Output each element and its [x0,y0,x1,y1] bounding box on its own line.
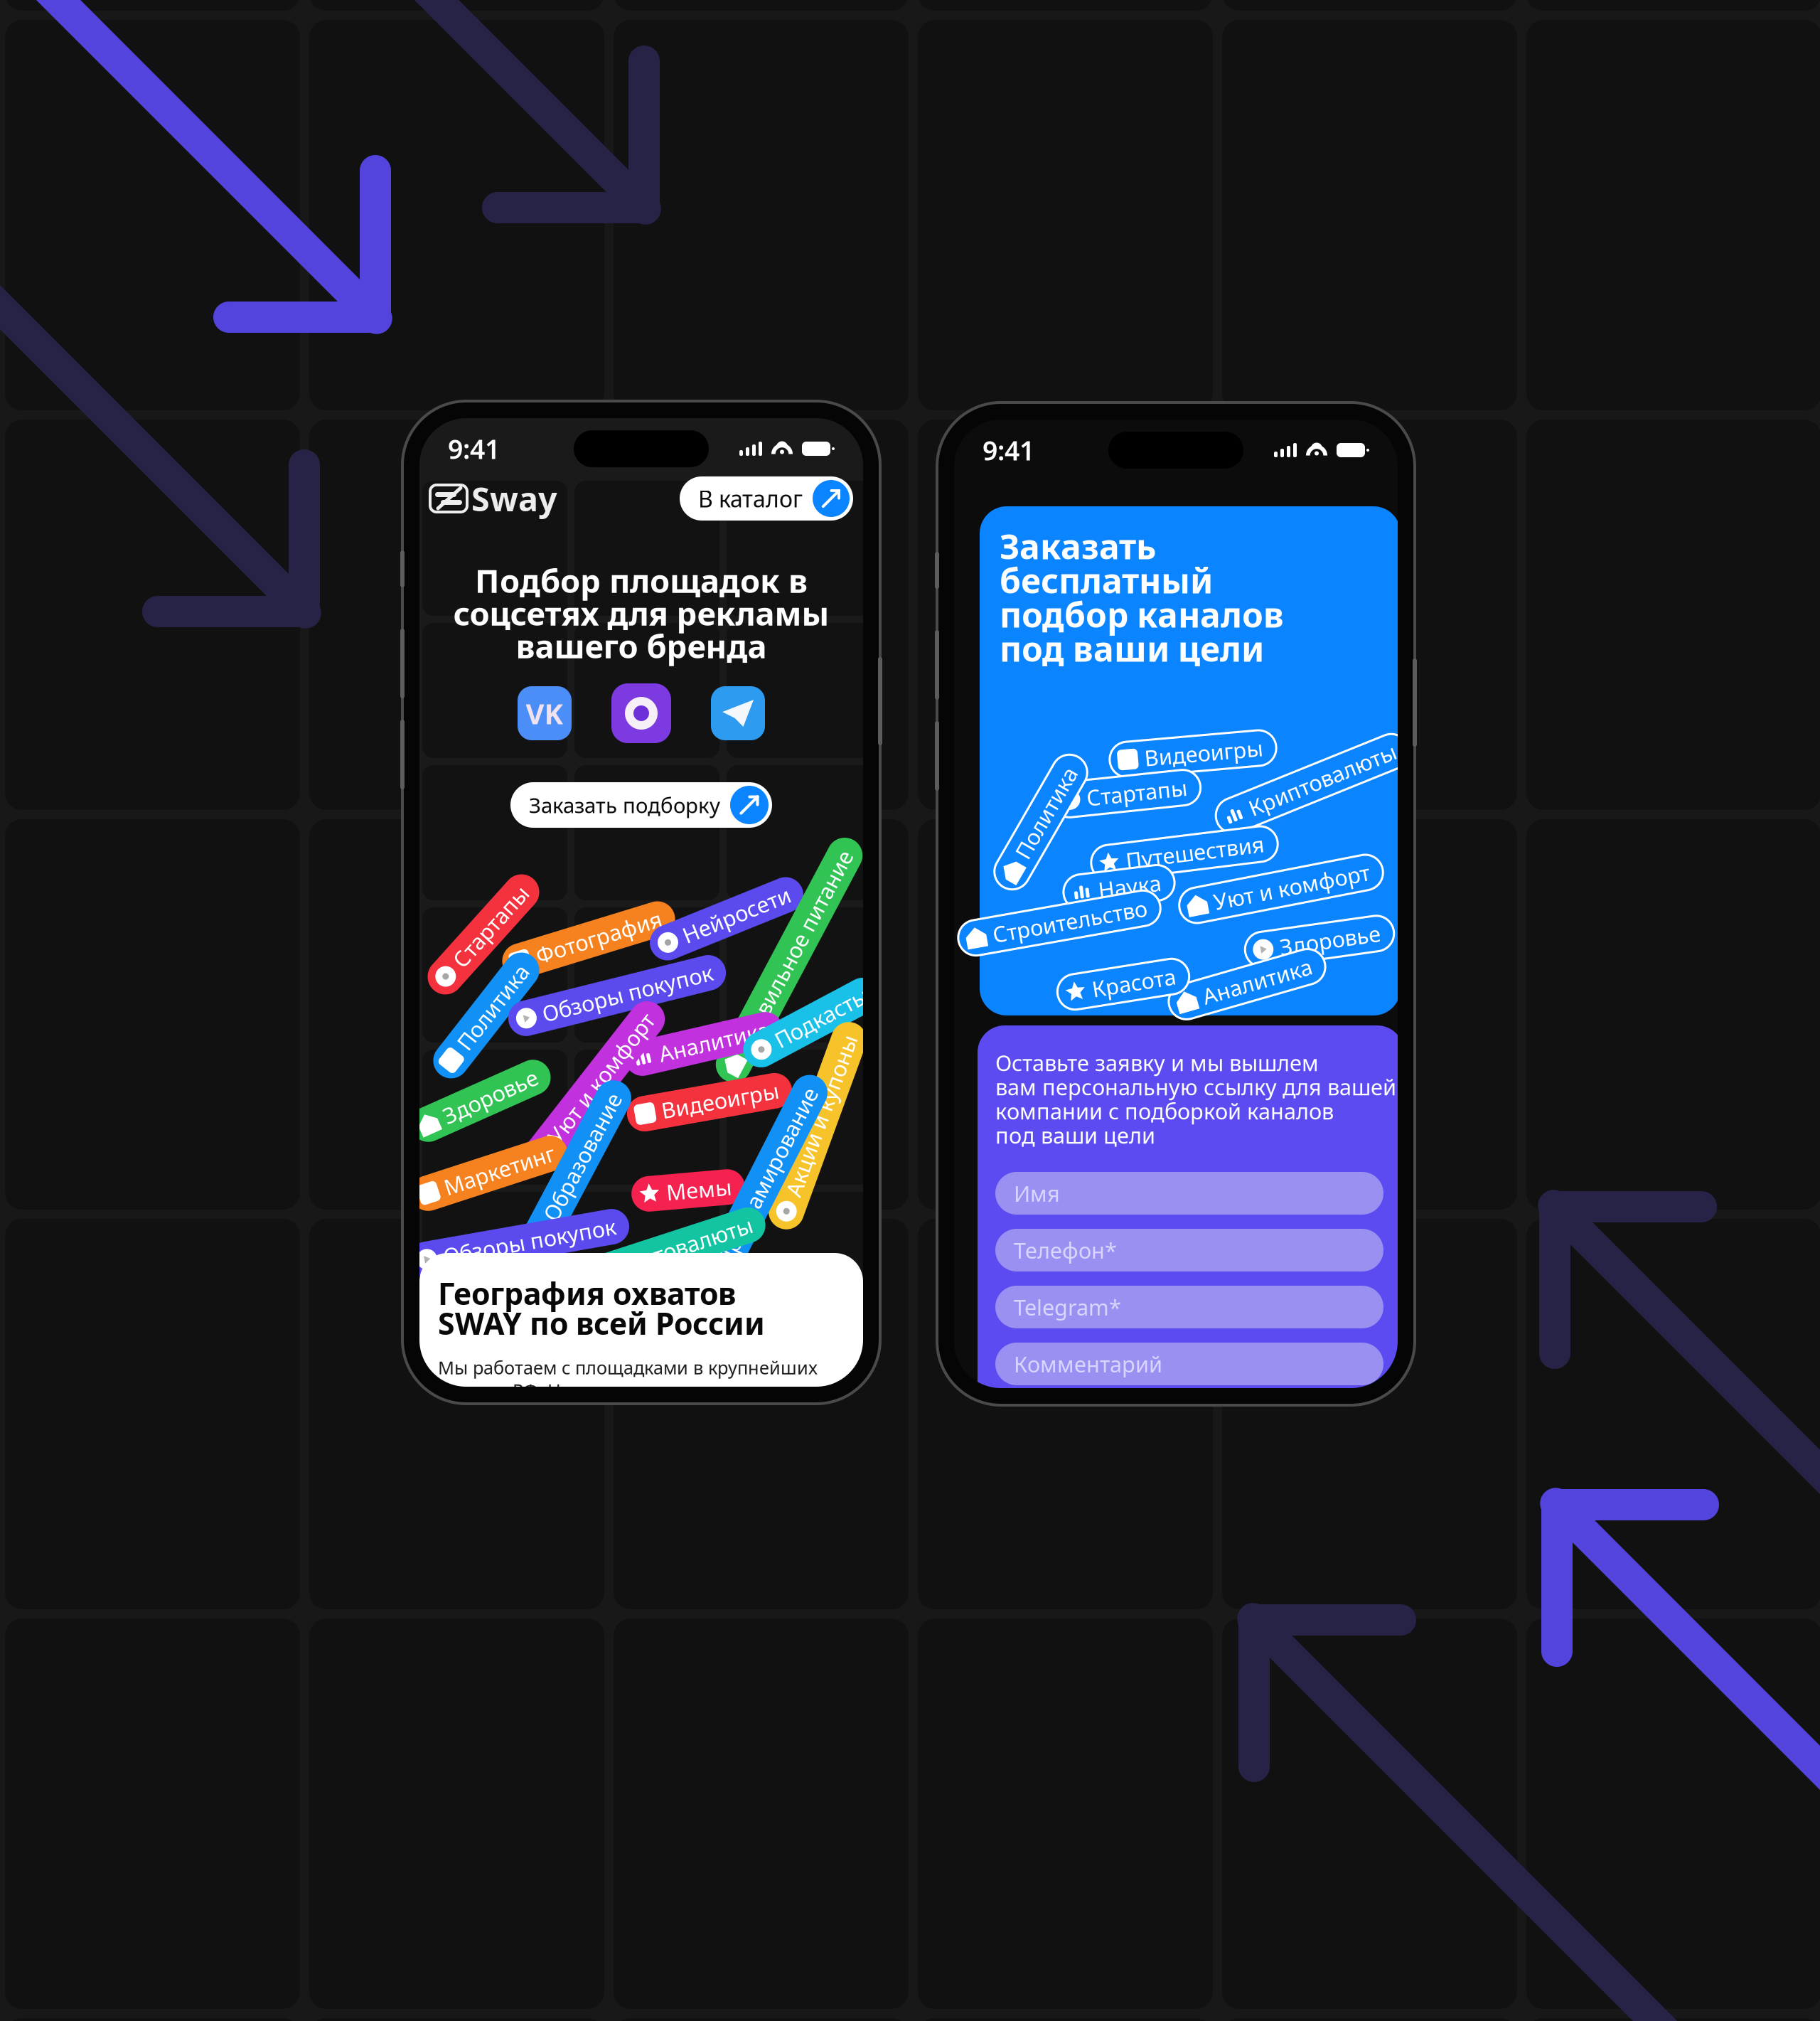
staticText: Уют и комфорт [526,1072,684,1101]
staticText: Уют и комфорт [1213,874,1371,903]
button[interactable]: Стартапы [409,917,558,952]
staticText: Правильное питание [688,946,912,974]
staticText: Telegram* [1014,1293,1121,1321]
button[interactable]: Мемы [631,1173,745,1208]
staticText: под ваши цели [995,1121,1155,1150]
button[interactable]: Telegram* [995,1286,1383,1328]
button[interactable]: Обзоры покупок [505,978,729,1013]
staticText: Нейросети [680,904,794,933]
button[interactable]: Акции и купоны [708,1108,927,1143]
staticText: Политика [446,1001,548,1030]
button[interactable]: Нейросети [645,901,808,937]
button[interactable]: Здоровье [406,1083,556,1119]
staticText: городах РФ. Наведите на карту, [438,1378,714,1402]
button[interactable]: Политика [966,804,1116,840]
staticText: Здоровье [440,1086,542,1115]
staticText: 9:41 [448,431,500,466]
button[interactable]: Подкасты [737,1005,887,1040]
staticText: Наука [1098,873,1161,902]
staticText: Мы работаем с площадками в крупнейших [438,1355,818,1379]
staticText: Оставьте заявку и мы вышлем [995,1048,1319,1077]
staticText: Комментарий [1014,1349,1162,1378]
staticText: Криптовалюты [1244,769,1402,798]
button[interactable]: Телефон* [995,1229,1383,1271]
button[interactable]: Красота [1057,966,1190,1002]
staticText: Подкасты [771,1008,874,1037]
staticText: Заказать [1000,523,1156,569]
button[interactable]: Строительство [957,905,1162,941]
staticText: Обзоры покупок [442,1229,617,1257]
staticText: Криптовалюты [599,1237,756,1266]
staticText: Акции и купоны [743,1111,913,1140]
button[interactable]: Здоровье [1244,924,1395,959]
staticText: VK [526,694,563,732]
staticText: Аналитика [658,1029,771,1058]
button[interactable]: Аналитика [1166,966,1328,1002]
button[interactable]: Видеоигры [626,1084,793,1120]
button[interactable]: Путешествия [1091,836,1278,871]
staticText: вам персональную ссылку для вашей [995,1072,1396,1101]
staticText: В каталог [698,483,803,514]
staticText: Подбор площадок в [475,559,808,602]
staticText: бесплатный [1000,558,1213,603]
button[interactable]: Криптовалюты [1210,766,1415,801]
button[interactable]: Уют и комфорт [1178,871,1385,907]
staticText: вашего бренда [516,624,767,667]
staticText: География охватов [438,1273,736,1313]
button[interactable]: Обзоры покупок [407,1225,631,1261]
staticText: SWAY по всей России [438,1303,765,1343]
button[interactable]: Маркетинг [407,1156,571,1191]
button[interactable]: Стартапы [1051,776,1201,811]
button[interactable]: В каталог [680,476,853,521]
staticText: 9:41 [983,433,1034,468]
staticText: Заказать подборку [529,791,720,819]
staticText: подбор каналов [1000,592,1284,637]
staticText: Sway [471,476,557,521]
staticText: Строительство [992,909,1148,937]
button[interactable]: Заказать подборку [510,782,772,828]
button[interactable]: Криптовалюты [564,1234,770,1269]
button[interactable]: Наука [1063,870,1175,905]
staticText: компании с подборкой каналов [995,1097,1334,1125]
staticText: Маркетинг [442,1159,557,1188]
staticText: Видеоигры [661,1088,780,1117]
staticText: Политика [1001,808,1102,836]
staticText: Имя [1014,1179,1060,1208]
staticText: Програмирование [674,1172,871,1201]
staticText: Фотография [534,926,665,955]
staticText: под ваши цели [1000,626,1264,671]
button[interactable]: Аналитика [623,1026,785,1062]
button[interactable]: Комментарий [995,1343,1383,1385]
button[interactable]: Политика [411,998,561,1033]
staticText: Видеоигры [1144,739,1263,768]
staticText: Путешествия [1125,839,1265,868]
staticText: Красота [1092,970,1176,999]
staticText: Обзоры покупок [540,981,715,1010]
staticText: Телефон* [1014,1236,1117,1265]
button[interactable]: Я ознакомился и согласен с Политикой [995,1385,1305,1463]
staticText: Стартапы [444,920,545,949]
staticText: Аналитика [1201,970,1314,999]
button[interactable]: Имя [995,1172,1383,1215]
button[interactable]: Програмирование [639,1168,885,1204]
button[interactable]: Образование [482,1148,672,1184]
button[interactable]: Фотография [499,922,678,958]
staticText: Мемы [666,1176,732,1205]
staticText: соцсетях для рекламы [453,592,829,634]
staticText: Стартапы [1086,779,1187,808]
button[interactable]: Видеоигры [1109,736,1276,772]
staticText: Образование [517,1152,659,1181]
staticText: Здоровье [1279,927,1381,956]
button[interactable]: Уют и комфорт [491,1069,698,1104]
button[interactable]: Правильное питание [653,942,925,978]
